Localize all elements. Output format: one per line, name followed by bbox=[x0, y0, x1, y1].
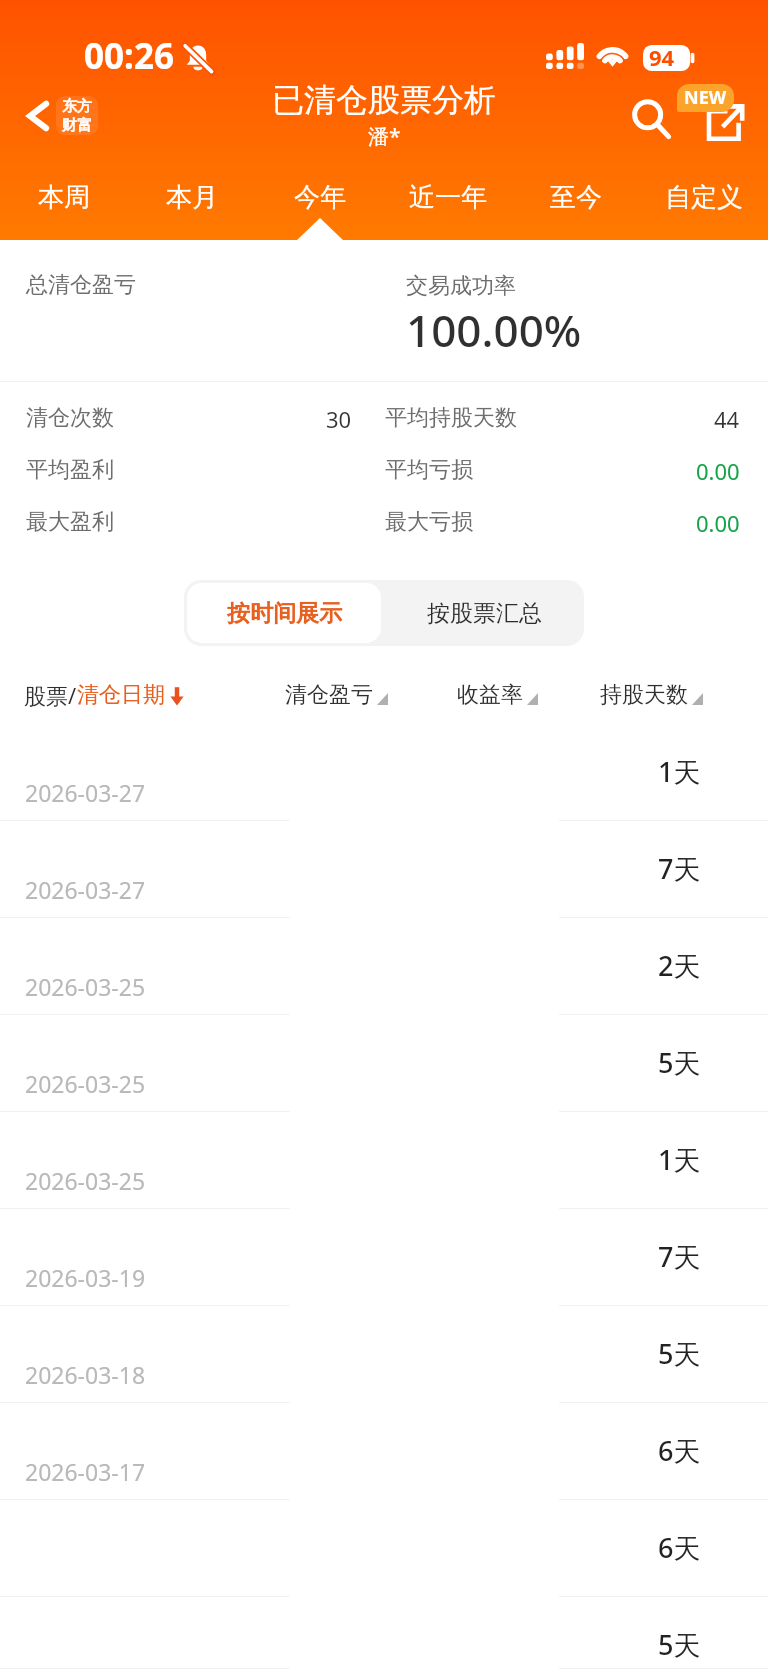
button[interactable]: 今年 bbox=[256, 162, 384, 240]
button[interactable]: 自定义 bbox=[640, 162, 768, 240]
button[interactable]: 2026-03-17 bbox=[0, 1403, 768, 1500]
button[interactable]: 近一年 bbox=[384, 162, 512, 240]
staticText: 财富 bbox=[62, 116, 92, 135]
button[interactable]: 2026-03-18 bbox=[0, 1306, 768, 1403]
staticText: 至今 bbox=[550, 181, 602, 214]
staticText: 本周 bbox=[38, 181, 90, 214]
staticText: 已清仓股票分析 bbox=[272, 80, 496, 120]
staticText: 收益率 bbox=[457, 681, 523, 709]
staticText: 平均盈利 bbox=[26, 456, 114, 484]
staticText: 潘* bbox=[368, 122, 401, 151]
button[interactable]: 2026-03-25 bbox=[0, 918, 768, 1015]
button[interactable]: Share bbox=[696, 93, 754, 151]
staticText: 5天 bbox=[658, 1626, 701, 1663]
button[interactable]: 6天 bbox=[0, 1500, 768, 1597]
staticText: 7天 bbox=[658, 1238, 701, 1275]
button[interactable]: 5天 bbox=[0, 1597, 768, 1669]
staticText: 2026-03-25 bbox=[25, 971, 146, 1002]
staticText: 2026-03-18 bbox=[25, 1359, 146, 1390]
staticText: 44 bbox=[714, 404, 740, 434]
staticText: 5天 bbox=[658, 1335, 701, 1372]
staticText: 2026-03-25 bbox=[25, 1165, 146, 1196]
button[interactable]: 2026-03-19 bbox=[0, 1209, 768, 1306]
button[interactable]: 按股票汇总 bbox=[384, 580, 584, 646]
staticText: 总清仓盈亏 bbox=[26, 271, 136, 299]
staticText: 6天 bbox=[658, 1529, 701, 1566]
staticText: 清仓次数 bbox=[26, 404, 114, 432]
staticText: 平均亏损 bbox=[385, 456, 473, 484]
button[interactable]: Search bbox=[620, 88, 682, 150]
staticText: 最大亏损 bbox=[385, 508, 473, 536]
staticText: 平均持股天数 bbox=[385, 404, 517, 432]
button[interactable]: 本周 bbox=[0, 162, 128, 240]
staticText: 股票/ bbox=[24, 680, 77, 710]
staticText: 交易成功率 bbox=[406, 272, 516, 300]
staticText: 近一年 bbox=[409, 181, 487, 214]
button[interactable]: 2026-03-25 bbox=[0, 1015, 768, 1112]
staticText: 0.00 bbox=[696, 508, 740, 538]
staticText: 2026-03-27 bbox=[25, 874, 146, 905]
staticText: 5天 bbox=[658, 1044, 701, 1081]
button[interactable]: 2026-03-25 bbox=[0, 1112, 768, 1209]
staticText: 2026-03-27 bbox=[25, 777, 146, 808]
button[interactable]: 2026-03-27 bbox=[0, 724, 768, 821]
staticText: 6天 bbox=[658, 1432, 701, 1469]
button[interactable]: 股票/ bbox=[24, 680, 188, 710]
staticText: 东方 bbox=[62, 97, 92, 116]
staticText: 今年 bbox=[294, 181, 346, 214]
staticText: 7天 bbox=[658, 850, 701, 887]
staticText: 清仓盈亏 bbox=[285, 681, 373, 709]
staticText: 94 bbox=[649, 42, 675, 72]
button[interactable]: 清仓盈亏 bbox=[285, 681, 388, 709]
button[interactable]: 至今 bbox=[512, 162, 640, 240]
button[interactable]: Back bbox=[0, 89, 112, 142]
staticText: 100.00% bbox=[406, 300, 582, 360]
staticText: 自定义 bbox=[665, 181, 743, 214]
staticText: 2026-03-17 bbox=[25, 1456, 146, 1487]
staticText: 1天 bbox=[658, 1141, 701, 1178]
staticText: 清仓日期 bbox=[77, 681, 165, 709]
button[interactable]: 按时间展示 bbox=[187, 583, 381, 643]
button[interactable]: 2026-03-27 bbox=[0, 821, 768, 918]
staticText: 2026-03-25 bbox=[25, 1068, 146, 1099]
staticText: 持股天数 bbox=[600, 681, 688, 709]
staticText: 本月 bbox=[166, 181, 218, 214]
staticText: 1天 bbox=[658, 753, 701, 790]
staticText: 30 bbox=[326, 404, 352, 434]
staticText: NEW bbox=[684, 85, 727, 110]
staticText: 按时间展示 bbox=[227, 599, 342, 628]
staticText: 2天 bbox=[658, 947, 701, 984]
button[interactable]: 持股天数 bbox=[600, 681, 703, 709]
staticText: 2026-03-19 bbox=[25, 1262, 146, 1293]
staticText: 按股票汇总 bbox=[427, 599, 542, 628]
staticText: 0.00 bbox=[696, 456, 740, 486]
button[interactable]: 收益率 bbox=[457, 681, 538, 709]
staticText: 最大盈利 bbox=[26, 508, 114, 536]
staticText: 00:26 bbox=[84, 32, 174, 80]
button[interactable]: 本月 bbox=[128, 162, 256, 240]
